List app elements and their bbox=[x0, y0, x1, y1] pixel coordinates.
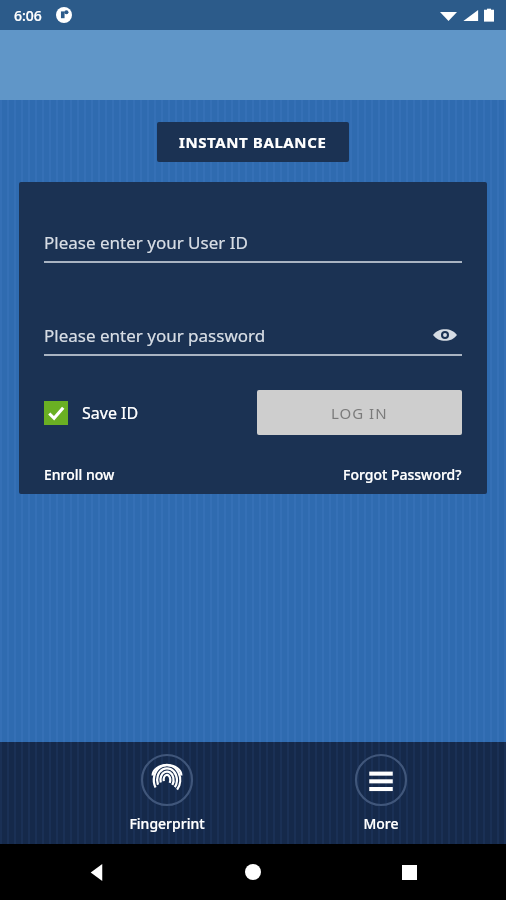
button[interactable]: Save ID bbox=[44, 401, 139, 425]
staticText: INSTANT BALANCE bbox=[179, 132, 327, 152]
staticText: More bbox=[363, 814, 399, 833]
button[interactable]: Home bbox=[233, 852, 273, 892]
staticText: Please enter your User ID bbox=[44, 231, 248, 254]
button[interactable]: Recent apps bbox=[389, 852, 429, 892]
button[interactable]: Fingerprint bbox=[121, 750, 213, 837]
staticText: Forgot Password? bbox=[343, 465, 462, 484]
button[interactable]: Enroll now bbox=[44, 465, 115, 484]
button[interactable]: Show password bbox=[428, 319, 462, 351]
staticText: 6:06 bbox=[14, 6, 42, 25]
button[interactable]: LOG IN bbox=[257, 390, 462, 435]
staticText: LOG IN bbox=[331, 403, 388, 423]
button[interactable]: INSTANT BALANCE bbox=[157, 122, 349, 162]
staticText: Please enter your password bbox=[44, 324, 266, 347]
button[interactable]: More bbox=[347, 750, 415, 837]
button[interactable]: Please enter your User ID bbox=[44, 226, 462, 258]
button[interactable]: Back bbox=[77, 852, 117, 892]
button[interactable]: Forgot Password? bbox=[343, 465, 462, 484]
staticText: Fingerprint bbox=[129, 814, 205, 833]
button[interactable]: Please enter your password bbox=[44, 319, 462, 351]
staticText: Save ID bbox=[82, 402, 139, 424]
staticText: Enroll now bbox=[44, 465, 115, 484]
